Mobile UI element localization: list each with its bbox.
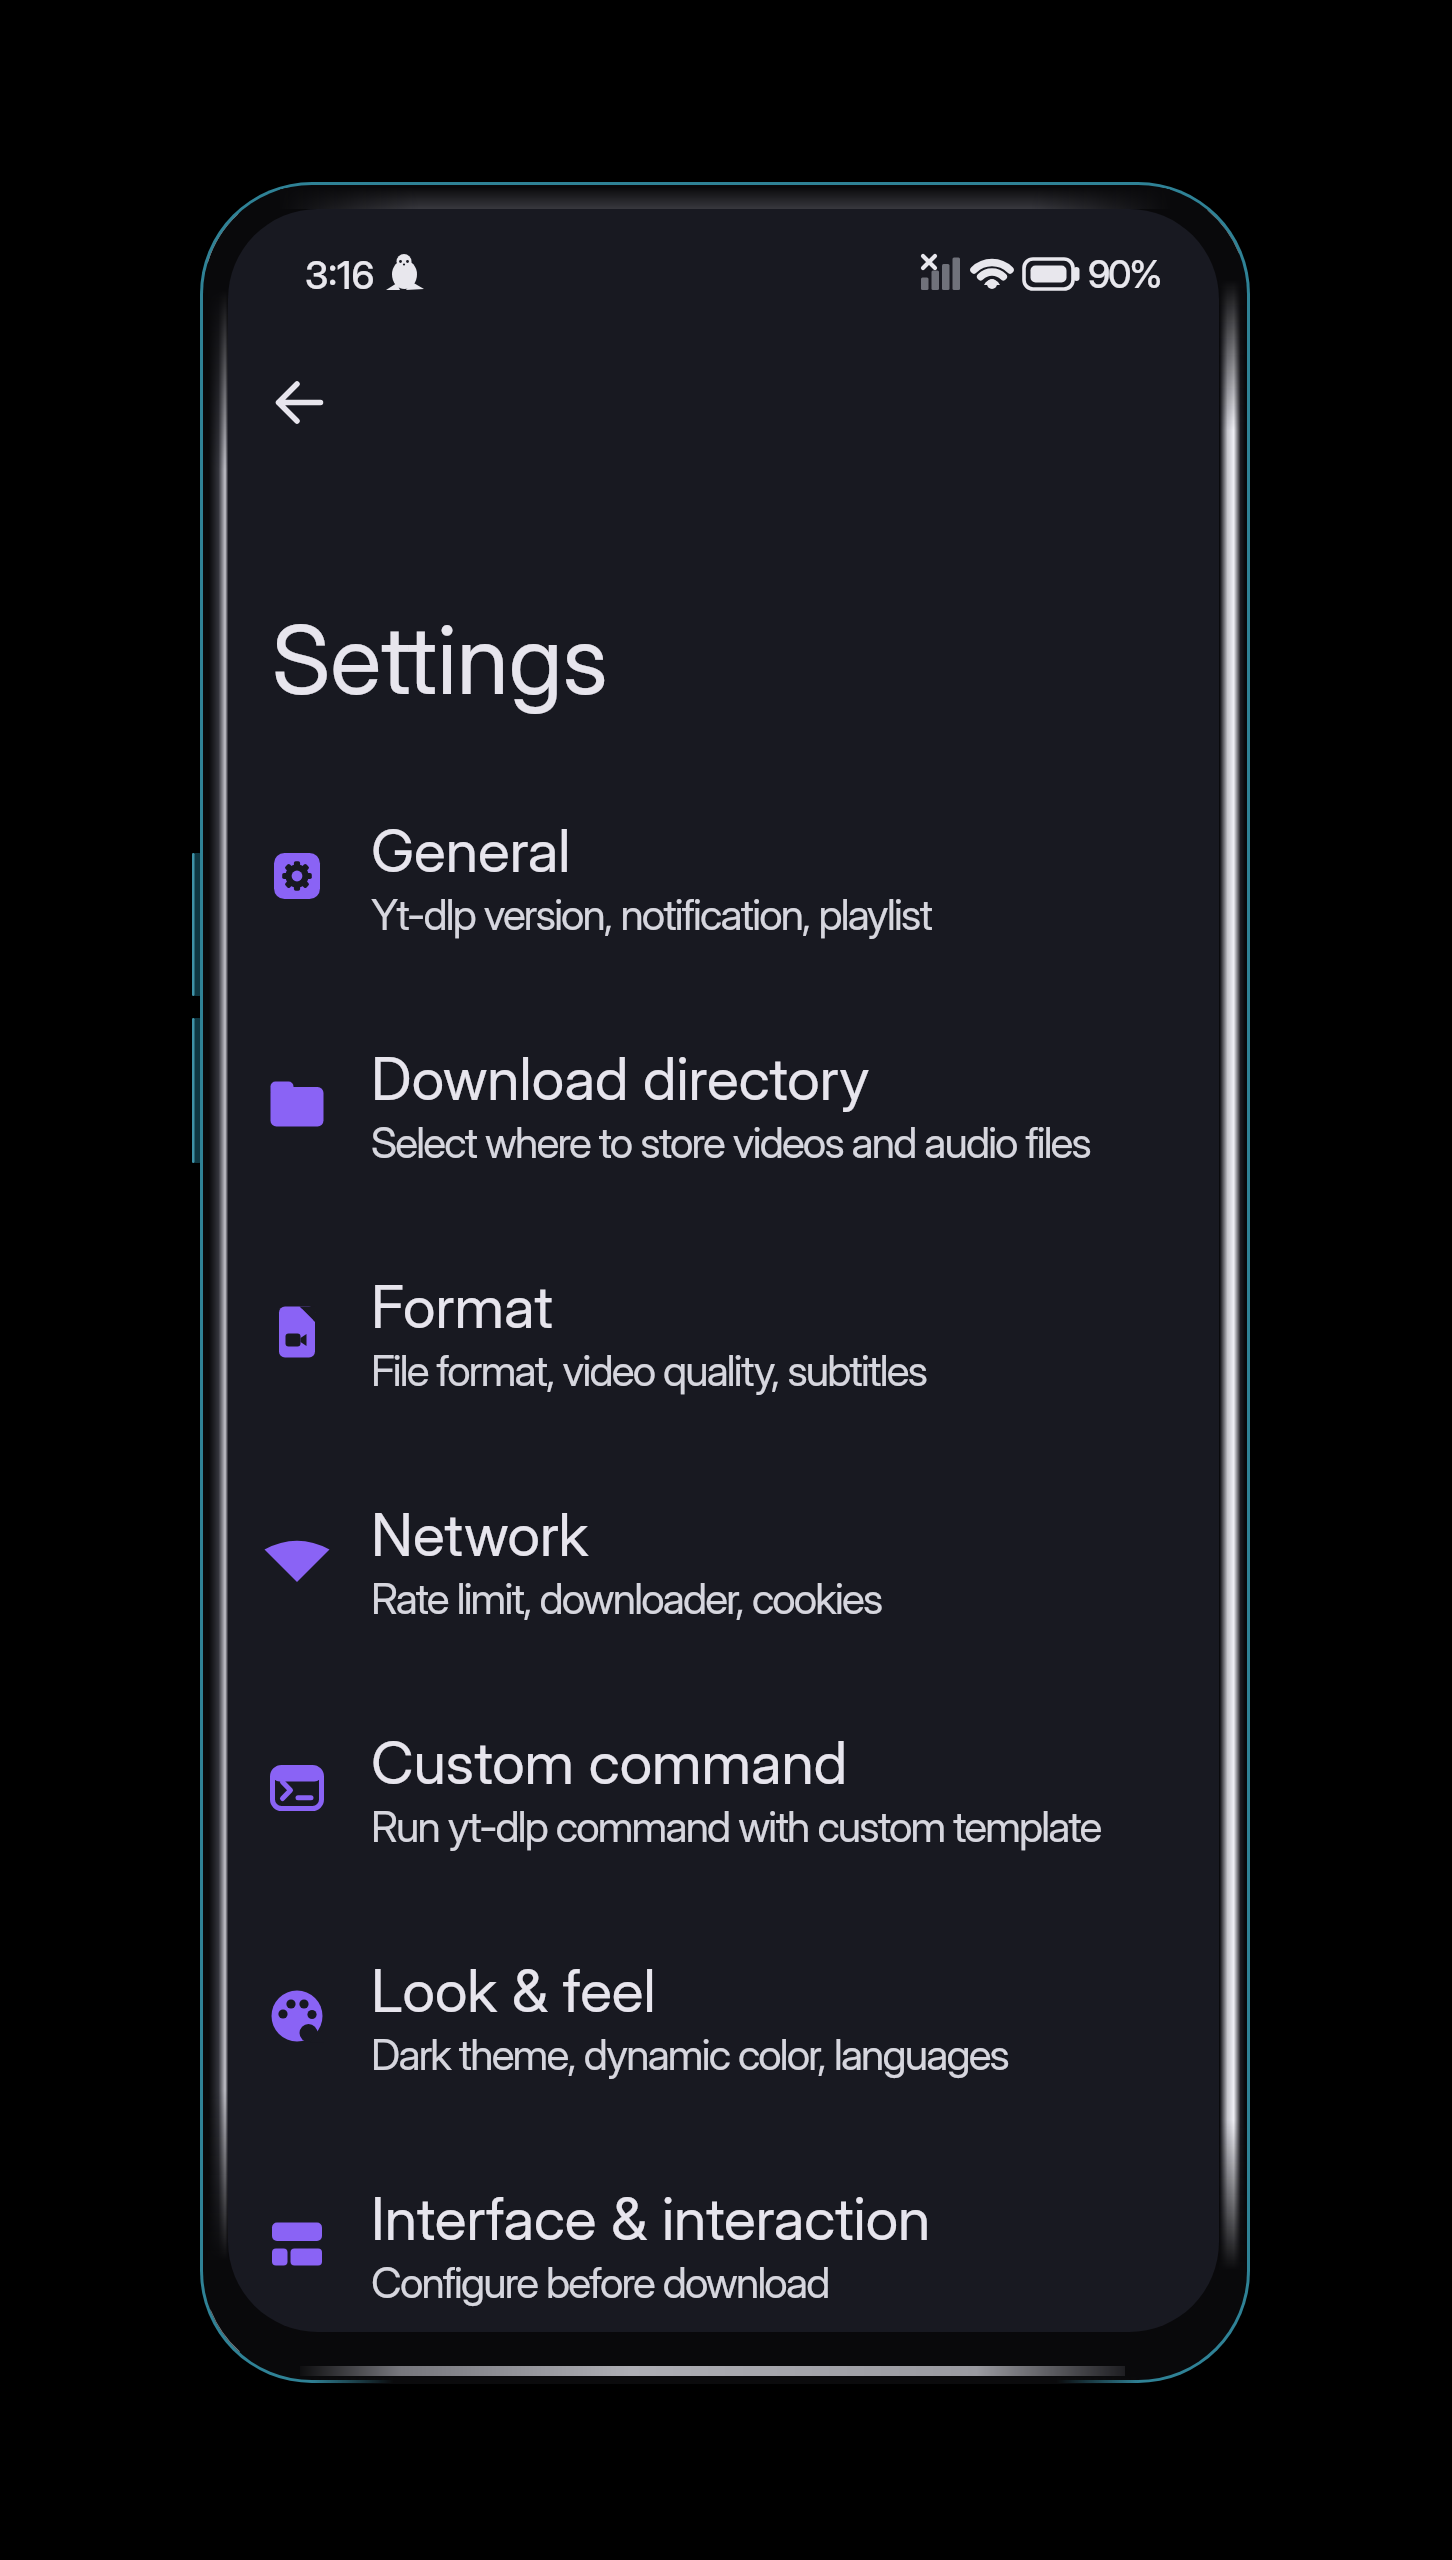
button[interactable]: Interface & interaction — [228, 2140, 1219, 2368]
button[interactable]: Download directory — [228, 1000, 1219, 1228]
staticText: Select where to store videos and audio f… — [371, 1117, 1090, 1168]
staticText: Network — [371, 1499, 589, 1570]
button[interactable]: Network — [228, 1456, 1219, 1684]
staticText: Run yt-dlp command with custom template — [371, 1801, 1101, 1852]
staticText: Download directory — [371, 1043, 870, 1114]
staticText: Settings — [272, 602, 608, 717]
button[interactable]: Look & feel — [228, 1912, 1219, 2140]
staticText: Yt-dlp version, notification, playlist — [371, 889, 932, 940]
staticText: Format — [371, 1271, 553, 1342]
button[interactable]: General — [228, 772, 1219, 1000]
staticText: Dark theme, dynamic color, languages — [371, 2029, 1008, 2080]
staticText: Interface & interaction — [371, 2183, 931, 2254]
staticText: Rate limit, downloader, cookies — [371, 1573, 882, 1624]
staticText: Look & feel — [371, 1955, 656, 2026]
staticText: Configure before download — [371, 2257, 829, 2308]
staticText: Custom command — [371, 1727, 848, 1798]
staticText: General — [371, 815, 571, 886]
button[interactable] — [264, 367, 336, 439]
staticText: 90% — [1088, 252, 1160, 297]
button[interactable]: Format — [228, 1228, 1219, 1456]
staticText: File format, video quality, subtitles — [371, 1345, 927, 1396]
button[interactable]: Custom command — [228, 1684, 1219, 1912]
staticText: 3:16 — [305, 252, 375, 299]
